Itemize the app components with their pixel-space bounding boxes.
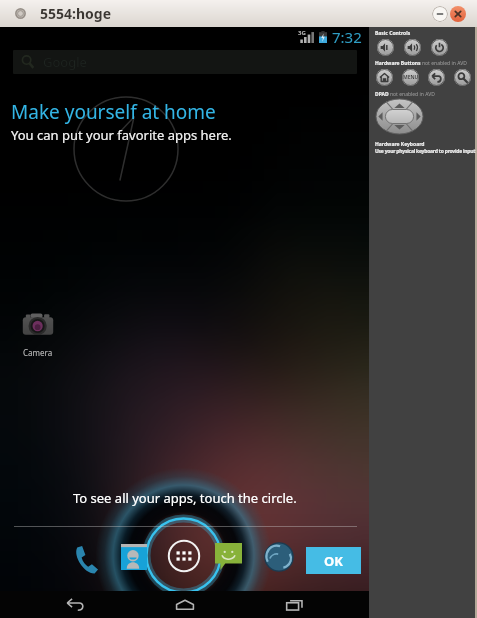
button[interactable]: Apps — [165, 537, 203, 575]
button[interactable]: People — [121, 544, 147, 570]
staticText: Camera — [23, 347, 53, 358]
button[interactable]: Close — [450, 6, 466, 22]
staticText: Hardware Keyboard — [375, 141, 425, 148]
staticText: not enabled in AVD — [390, 91, 435, 98]
button[interactable]: Home — [376, 69, 393, 86]
button[interactable]: Volume up — [404, 39, 421, 56]
button[interactable]: Power — [431, 39, 448, 56]
button[interactable]: Minimize — [432, 6, 448, 22]
staticText: Basic Controls — [375, 30, 411, 37]
staticText: Hardware Buttons — [375, 60, 422, 67]
staticText: DPAD — [375, 91, 390, 98]
staticText: 7:32 — [332, 27, 362, 46]
staticText: not enabled in AVD — [422, 60, 467, 67]
button[interactable]: D-pad — [376, 99, 423, 134]
button[interactable]: Recent apps — [259, 591, 329, 618]
button[interactable]: Volume down — [377, 39, 394, 56]
staticText: OK — [324, 552, 343, 570]
staticText: MENU — [403, 74, 419, 81]
staticText: You can put your favorite apps here. — [11, 126, 232, 144]
button[interactable]: Back — [428, 69, 445, 86]
staticText: Make yourself at home — [11, 99, 216, 125]
staticText: 3G — [298, 29, 306, 37]
button[interactable]: OK — [306, 547, 361, 574]
staticText: 5554:hoge — [40, 4, 112, 23]
button[interactable]: Home — [150, 591, 220, 618]
staticText: Google — [43, 53, 87, 71]
button[interactable]: Messaging — [215, 543, 242, 570]
button[interactable]: Menu — [402, 69, 419, 86]
button[interactable]: Browser — [264, 542, 294, 572]
button[interactable]: Phone — [69, 541, 101, 573]
button[interactable]: Back — [40, 591, 110, 618]
button[interactable]: Search — [454, 69, 471, 86]
staticText: Use your physical keyboard to provide in… — [375, 148, 476, 155]
button[interactable]: Camera — [18, 307, 58, 358]
staticText: To see all your apps, touch the circle. — [73, 489, 297, 507]
